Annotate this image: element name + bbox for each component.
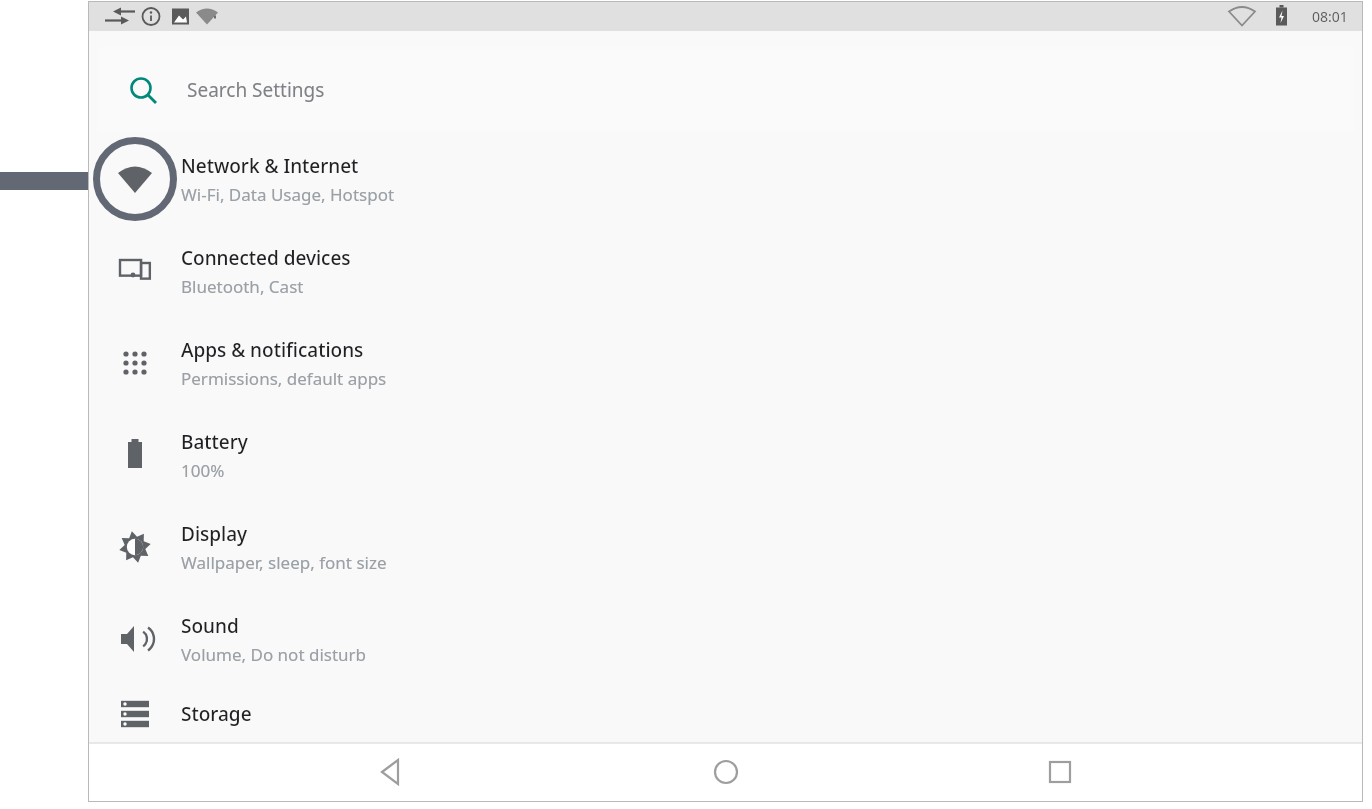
- staticText: Display: [181, 521, 248, 547]
- staticText: Storage: [181, 701, 252, 727]
- staticText: Wallpaper, sleep, font size: [181, 551, 387, 574]
- staticText: Permissions, default apps: [181, 367, 387, 390]
- button[interactable]: Connected devices: [89, 225, 1362, 317]
- button[interactable]: Storage: [89, 685, 1362, 743]
- staticText: Network & Internet: [181, 153, 359, 179]
- button[interactable]: Network & Internet: [89, 133, 1362, 225]
- button[interactable]: Recent apps: [1028, 743, 1092, 801]
- button[interactable]: Display: [89, 501, 1362, 593]
- button[interactable]: Battery: [89, 409, 1362, 501]
- button[interactable]: Sound: [89, 593, 1362, 685]
- button[interactable]: Back: [359, 743, 423, 801]
- staticText: Connected devices: [181, 245, 351, 271]
- staticText: Search Settings: [187, 77, 325, 103]
- button[interactable]: Apps & notifications: [89, 317, 1362, 409]
- staticText: Sound: [181, 613, 239, 639]
- staticText: Volume, Do not disturb: [181, 643, 367, 666]
- button[interactable]: Search Settings: [97, 46, 1354, 133]
- staticText: 08:01: [1312, 7, 1348, 26]
- button[interactable]: Home: [694, 743, 758, 801]
- staticText: Bluetooth, Cast: [181, 275, 304, 298]
- staticText: Wi-Fi, Data Usage, Hotspot: [181, 183, 395, 206]
- staticText: Apps & notifications: [181, 337, 364, 363]
- staticText: Battery: [181, 429, 248, 455]
- staticText: 100%: [181, 459, 225, 482]
